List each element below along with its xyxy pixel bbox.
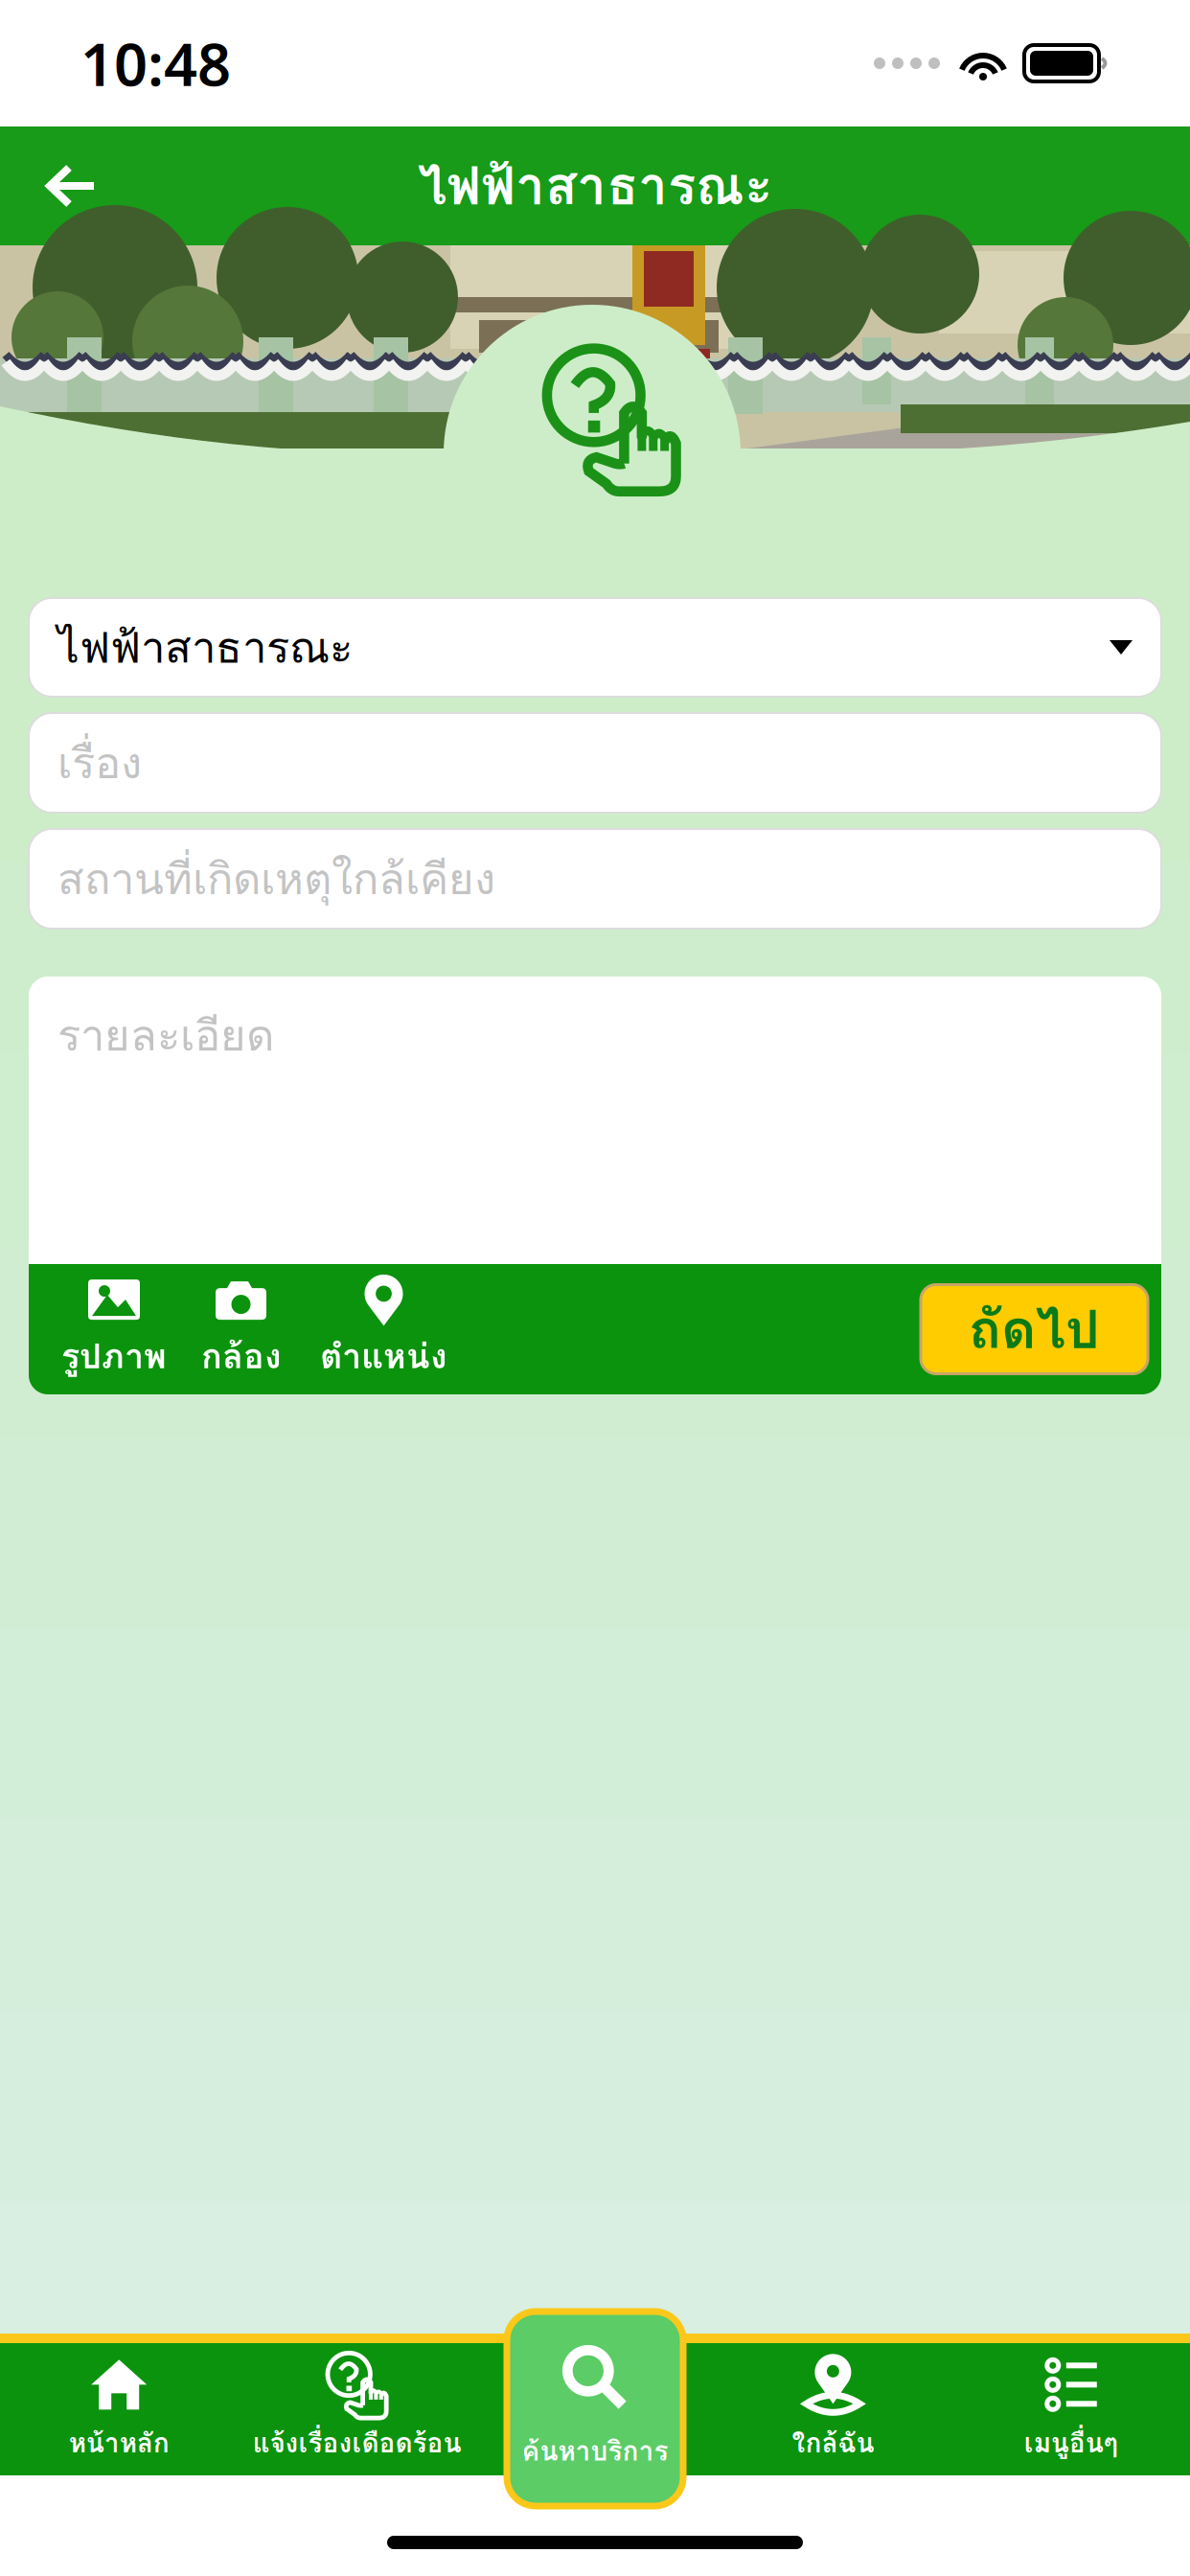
staticText: กล้อง — [201, 1329, 282, 1383]
button[interactable]: กล้อง — [201, 1276, 282, 1383]
staticText: รูปภาพ — [61, 1329, 167, 1383]
staticText: รายละเอียด — [57, 1001, 274, 1069]
button[interactable]: หน้าหลัก — [0, 2343, 238, 2475]
button[interactable]: เมนูอื่นๆ — [952, 2343, 1190, 2475]
button[interactable]: ใกล้ฉัน — [714, 2343, 952, 2475]
button[interactable]: ถัดไป — [921, 1285, 1148, 1374]
staticText: เมนูอื่นๆ — [1024, 2422, 1118, 2464]
staticText: ใกล้ฉัน — [792, 2422, 874, 2464]
staticText: ถัดไป — [969, 1288, 1100, 1371]
staticText: ตำแหน่ง — [320, 1329, 447, 1383]
staticText: สถานที่เกิดเหตุใกล้เคียง — [57, 845, 495, 912]
staticText: ค้นหาบริการ — [522, 2422, 668, 2464]
button[interactable]: ตำแหน่ง — [320, 1276, 447, 1383]
button[interactable]: ไฟฟ้าสาธารณะ — [29, 598, 1161, 697]
button[interactable]: ค้นหาบริการ — [507, 2311, 683, 2506]
button[interactable]: รูปภาพ — [61, 1276, 167, 1383]
button[interactable]: ค้นหาบริการ — [476, 2343, 714, 2475]
button[interactable]: Back — [0, 126, 142, 245]
button[interactable]: แจ้งเรื่องเดือดร้อน — [238, 2343, 476, 2475]
staticText: 10:48 — [80, 24, 231, 102]
staticText: ไฟฟ้าสาธารณะ — [57, 614, 353, 681]
staticText: ไฟฟ้าสาธารณะ — [418, 145, 772, 226]
staticText: แจ้งเรื่องเดือดร้อน — [253, 2422, 461, 2464]
staticText: เรื่อง — [57, 729, 142, 796]
staticText: หน้าหลัก — [69, 2422, 169, 2464]
staticText: ค้นหาบริการ — [522, 2430, 668, 2472]
